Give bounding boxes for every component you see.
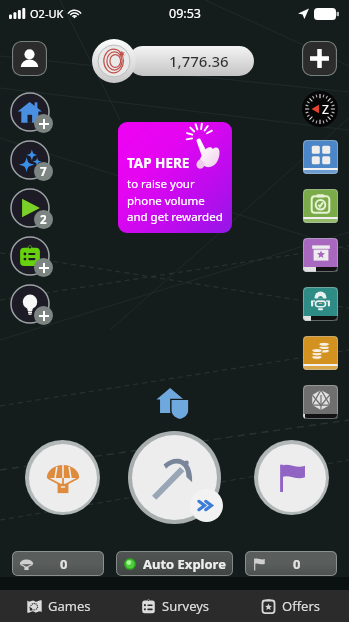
button[interactable]: Tile 1 bbox=[303, 189, 338, 223]
button[interactable]: Tile 4 bbox=[303, 336, 338, 370]
staticText: 0 bbox=[60, 555, 68, 573]
button[interactable]: Tile 2 bbox=[303, 238, 338, 272]
staticText: 7 bbox=[40, 164, 47, 180]
button[interactable]: Add bbox=[302, 41, 337, 76]
button[interactable]: Mine bbox=[128, 431, 221, 524]
button[interactable]: Auto Explore bbox=[116, 551, 233, 576]
button[interactable]: Compass bbox=[302, 91, 338, 127]
staticText: Offers bbox=[282, 597, 321, 615]
button[interactable]: Tile 0 bbox=[303, 140, 338, 174]
staticText: O2-UK bbox=[30, 6, 64, 21]
button[interactable]: Fast forward bbox=[190, 489, 223, 522]
button[interactable]: Resource 1 bbox=[10, 140, 60, 188]
button[interactable]: Tile 5 bbox=[303, 385, 338, 419]
button[interactable]: Profile bbox=[12, 41, 47, 76]
button[interactable]: Surveys bbox=[117, 590, 233, 622]
staticText: 0 bbox=[293, 555, 301, 573]
staticText: Games bbox=[48, 597, 91, 615]
button[interactable]: TAP HERE bbox=[118, 122, 232, 233]
staticText: 2 bbox=[40, 212, 47, 228]
staticText: TAP HERE bbox=[127, 154, 190, 172]
staticText: Z bbox=[322, 101, 329, 117]
staticText: 1,776.36 bbox=[169, 51, 229, 71]
button[interactable]: Tile 3 bbox=[303, 287, 338, 321]
button[interactable]: Offers bbox=[233, 590, 349, 622]
staticText: Auto Explore bbox=[143, 555, 226, 573]
button[interactable]: Currency bbox=[92, 39, 136, 83]
button[interactable]: 0 bbox=[245, 551, 337, 576]
staticText: Surveys bbox=[162, 597, 210, 615]
button[interactable]: Resource 3 bbox=[10, 236, 60, 284]
button[interactable]: 0 bbox=[12, 551, 104, 576]
staticText: 09:53 bbox=[169, 5, 201, 22]
button[interactable]: Resource 4 bbox=[10, 284, 60, 332]
button[interactable]: Games bbox=[0, 590, 117, 622]
button[interactable]: Resource 0 bbox=[10, 92, 60, 140]
staticText: to raise your phone volume and get rewar… bbox=[127, 176, 223, 224]
button[interactable]: Flag bbox=[254, 440, 329, 515]
button[interactable]: Resource 2 bbox=[10, 188, 60, 236]
button[interactable]: 1,776.36 bbox=[128, 46, 254, 76]
button[interactable]: Airdrop bbox=[25, 440, 100, 515]
